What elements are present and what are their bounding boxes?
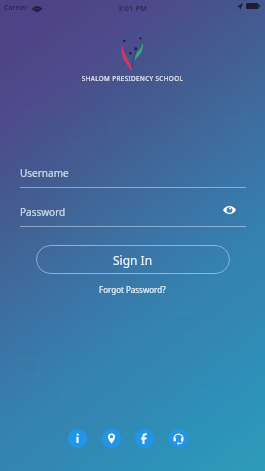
staticText: Carrier (4, 3, 28, 13)
button[interactable]: Sign In (36, 245, 230, 274)
button[interactable]: Facebook (135, 429, 154, 448)
staticText: Forgot Password? (99, 284, 166, 295)
button[interactable]: Password (20, 202, 246, 222)
button[interactable]: Support (169, 429, 188, 448)
button[interactable]: Show password (221, 201, 238, 218)
staticText: 3:01 PM (118, 3, 148, 13)
button[interactable]: Information (68, 429, 87, 448)
staticText: Sign In (113, 252, 153, 268)
staticText: Username (20, 166, 69, 180)
staticText: Password (20, 205, 66, 219)
button[interactable]: Username (20, 163, 246, 183)
button[interactable]: Forgot Password? (95, 282, 170, 297)
button[interactable]: Location (102, 429, 121, 448)
staticText: SHALOM PRESIDENCY SCHOOL (0, 74, 265, 83)
